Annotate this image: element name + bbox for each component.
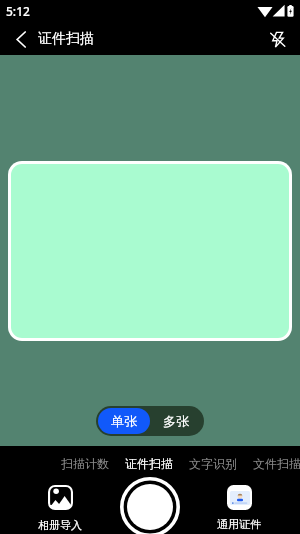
button[interactable]: Back (6, 24, 36, 54)
button[interactable]: 多张 (150, 408, 202, 434)
button[interactable]: Shutter (119, 478, 181, 534)
staticText: 证件扫描 (125, 456, 173, 471)
button[interactable]: 文字识别 (181, 448, 245, 478)
staticText: 多张 (163, 413, 189, 429)
staticText: 文件扫描 (253, 456, 300, 471)
staticText: 相册导入 (38, 518, 82, 532)
staticText: 文字识别 (189, 456, 237, 471)
button[interactable]: 通用证件 (204, 476, 274, 531)
staticText: 扫描计数 (61, 456, 109, 471)
button[interactable]: 扫描计数 (53, 448, 117, 478)
staticText: 通用证件 (217, 517, 261, 531)
staticText: 证件扫描 (38, 30, 94, 48)
staticText: 单张 (111, 413, 137, 429)
button[interactable]: 文件扫描 (245, 448, 300, 478)
button[interactable]: 证件扫描 (117, 448, 181, 478)
staticText: 5:12 (6, 3, 30, 19)
button[interactable]: Flash off (262, 24, 292, 54)
button[interactable]: 单张 (98, 408, 150, 434)
button[interactable]: 相册导入 (25, 476, 95, 532)
